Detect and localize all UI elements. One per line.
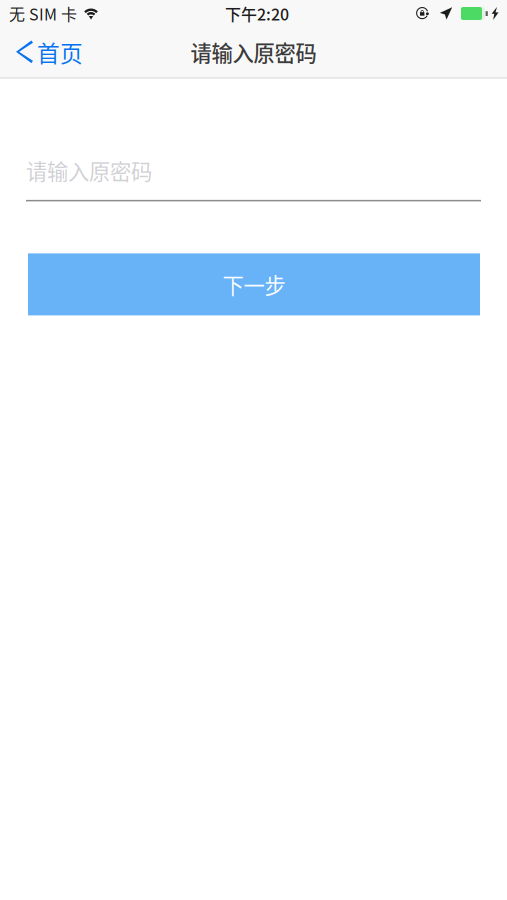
staticText: 首页 — [37, 36, 83, 68]
button[interactable]: 请输入原密码 — [0, 155, 507, 201]
staticText: 请输入原密码 — [26, 155, 152, 186]
staticText: 下午2:20 — [225, 2, 289, 25]
staticText: 请输入原密码 — [190, 37, 316, 67]
button[interactable]: 返回首页 — [0, 30, 93, 74]
staticText: 无 SIM 卡 — [9, 2, 77, 25]
staticText: 下一步 — [222, 269, 285, 300]
button[interactable]: 下一步 — [28, 253, 480, 315]
